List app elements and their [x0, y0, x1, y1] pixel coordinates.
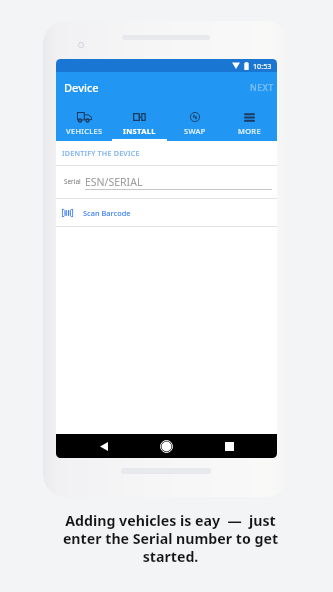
- button[interactable]: NEXT: [243, 76, 277, 100]
- staticText: Adding vehicles is eay — just enter the …: [60, 511, 281, 567]
- staticText: IDENTIFY THE DEVICE: [62, 148, 140, 158]
- button[interactable]: Recents: [216, 434, 243, 458]
- button[interactable]: INSTALL: [112, 103, 167, 141]
- button[interactable]: Home: [153, 434, 180, 458]
- staticText: MORE: [238, 126, 261, 136]
- button[interactable]: Scan Barcode: [56, 199, 277, 226]
- button[interactable]: Serial: [56, 166, 277, 198]
- staticText: ESN/SERIAL: [85, 175, 143, 189]
- button[interactable]: Back: [91, 434, 117, 458]
- staticText: NEXT: [250, 82, 274, 94]
- button[interactable]: VEHICLES: [56, 103, 112, 141]
- staticText: Scan Barcode: [83, 208, 131, 218]
- staticText: 10:53: [253, 61, 272, 71]
- staticText: SWAP: [184, 126, 206, 136]
- staticText: INSTALL: [123, 126, 156, 136]
- button[interactable]: MORE: [222, 103, 277, 141]
- button[interactable]: SWAP: [167, 103, 222, 141]
- staticText: Device: [64, 80, 99, 95]
- staticText: VEHICLES: [66, 126, 103, 136]
- staticText: Serial: [64, 177, 81, 186]
